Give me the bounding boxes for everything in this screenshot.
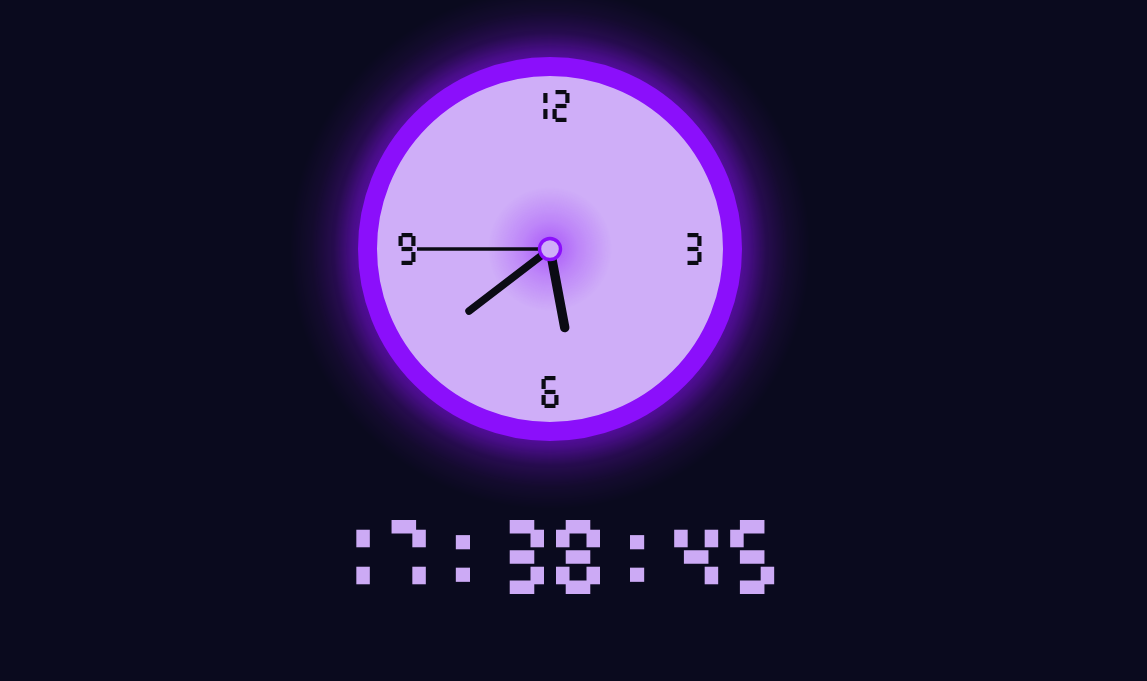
button[interactable]: Analog and digital clock showing 17:38:4… — [0, 0, 1147, 681]
